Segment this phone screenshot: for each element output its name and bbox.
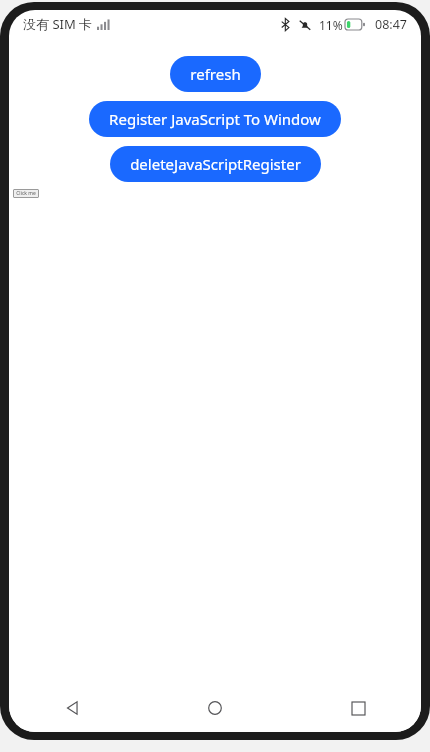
staticText: refresh <box>190 64 241 84</box>
button[interactable]: deleteJavaScriptRegister <box>110 146 321 182</box>
button[interactable]: Home <box>192 685 238 731</box>
staticText: Click me <box>16 190 36 197</box>
staticText: Register JavaScript To Window <box>109 109 321 129</box>
button[interactable]: Back <box>49 685 95 731</box>
staticText: 08:47 <box>375 16 407 33</box>
button[interactable]: Register JavaScript To Window <box>89 101 341 137</box>
button[interactable]: Click me <box>13 189 39 198</box>
button[interactable]: refresh <box>170 56 261 92</box>
button[interactable]: Recent apps <box>335 685 381 731</box>
staticText: 11% <box>319 17 343 33</box>
staticText: deleteJavaScriptRegister <box>130 154 301 174</box>
staticText: 没有 SIM 卡 <box>23 15 93 33</box>
